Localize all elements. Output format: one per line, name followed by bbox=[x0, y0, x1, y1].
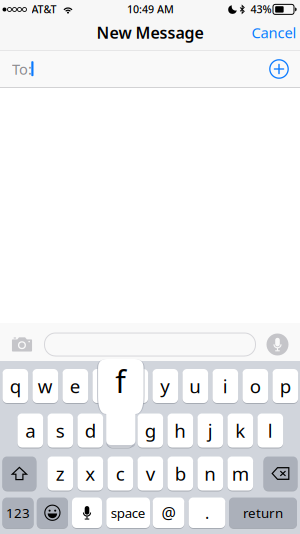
staticText: return bbox=[243, 504, 283, 522]
button[interactable]: x bbox=[77, 456, 103, 491]
button[interactable]: s bbox=[47, 413, 73, 448]
button[interactable]: a bbox=[17, 413, 43, 448]
staticText: o bbox=[250, 374, 261, 398]
staticText: To: bbox=[12, 59, 32, 79]
staticText: z bbox=[56, 461, 65, 486]
button[interactable]: space bbox=[106, 497, 150, 529]
button[interactable]: t bbox=[122, 369, 148, 404]
button[interactable]: j bbox=[197, 413, 223, 448]
button[interactable]: . bbox=[189, 497, 225, 529]
staticText: Cancel bbox=[251, 23, 296, 42]
button[interactable]: Shift bbox=[2, 456, 36, 491]
staticText: . bbox=[205, 502, 209, 523]
staticText: e bbox=[70, 374, 81, 398]
button[interactable]: Emoji bbox=[37, 497, 68, 529]
staticText: u bbox=[189, 374, 201, 398]
button[interactable]: Cancel bbox=[245, 17, 300, 48]
staticText: l bbox=[268, 418, 273, 443]
staticText: 10:49 AM bbox=[127, 2, 174, 16]
button[interactable]: i bbox=[212, 369, 238, 404]
button[interactable]: f bbox=[107, 413, 133, 448]
button[interactable]: k bbox=[227, 413, 253, 448]
button[interactable]: Add contact bbox=[265, 55, 293, 83]
button[interactable]: v bbox=[137, 456, 163, 491]
button[interactable]: Audio message bbox=[264, 331, 290, 357]
button[interactable]: n bbox=[197, 456, 223, 491]
button[interactable]: d bbox=[77, 413, 103, 448]
staticText: i bbox=[223, 374, 228, 398]
button[interactable]: Camera bbox=[6, 331, 38, 358]
staticText: @ bbox=[161, 502, 175, 523]
button[interactable]: Delete bbox=[263, 456, 297, 491]
staticText: v bbox=[146, 461, 155, 486]
button[interactable]: b bbox=[167, 456, 193, 491]
button[interactable]: z bbox=[47, 456, 73, 491]
staticText: q bbox=[10, 374, 21, 398]
staticText: b bbox=[175, 461, 186, 486]
button[interactable]: m bbox=[227, 456, 253, 491]
staticText: y bbox=[160, 374, 170, 398]
button[interactable]: w bbox=[32, 369, 58, 404]
staticText: h bbox=[174, 418, 186, 443]
button[interactable]: h bbox=[167, 413, 193, 448]
staticText: m bbox=[232, 461, 249, 486]
button[interactable]: q bbox=[2, 369, 28, 404]
button[interactable]: Dictation bbox=[72, 497, 102, 529]
staticText: space bbox=[111, 504, 146, 522]
staticText: c bbox=[116, 461, 125, 486]
button[interactable]: 123 bbox=[2, 497, 34, 529]
staticText: s bbox=[56, 418, 65, 443]
staticText: d bbox=[85, 418, 96, 443]
button[interactable]: o bbox=[242, 369, 268, 404]
staticText: x bbox=[85, 461, 95, 486]
button[interactable]: c bbox=[107, 456, 133, 491]
staticText: a bbox=[25, 418, 35, 443]
staticText: 123 bbox=[6, 504, 30, 522]
staticText: AT&T bbox=[31, 2, 56, 16]
staticText: f bbox=[115, 361, 126, 401]
button[interactable]: e bbox=[62, 369, 88, 404]
button[interactable]: r bbox=[92, 369, 118, 404]
staticText: g bbox=[145, 418, 156, 443]
staticText: p bbox=[280, 374, 291, 398]
button[interactable]: p bbox=[272, 369, 298, 404]
staticText: New Message bbox=[96, 22, 203, 43]
staticText: j bbox=[208, 418, 213, 443]
staticText: w bbox=[38, 374, 53, 398]
button[interactable]: g bbox=[137, 413, 163, 448]
button[interactable]: y bbox=[152, 369, 178, 404]
button[interactable]: @ bbox=[153, 497, 184, 529]
staticText: n bbox=[204, 461, 216, 486]
button[interactable]: return bbox=[229, 497, 297, 529]
button[interactable]: u bbox=[182, 369, 208, 404]
staticText: 43% bbox=[250, 2, 271, 16]
staticText: k bbox=[235, 418, 245, 443]
button[interactable]: l bbox=[257, 413, 283, 448]
